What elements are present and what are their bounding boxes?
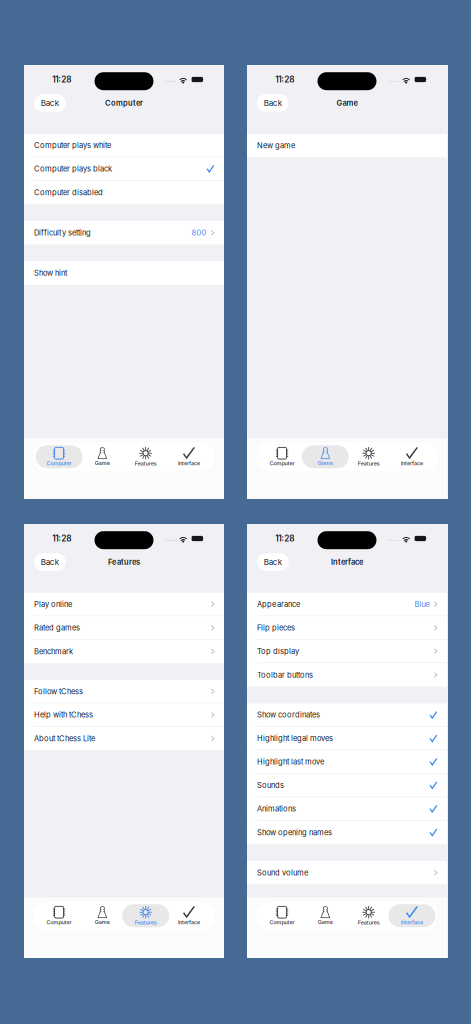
button[interactable]: Interface: [388, 445, 435, 468]
button[interactable]: Show hint: [24, 261, 224, 285]
staticText: Toolbar buttons: [257, 670, 313, 679]
button[interactable]: Highlight last move: [247, 750, 447, 774]
button[interactable]: Help with tChess: [24, 703, 224, 727]
staticText: Computer: [270, 460, 295, 466]
staticText: Highlight last move: [257, 757, 324, 766]
staticText: Interface: [331, 557, 363, 566]
staticText: Rated games: [34, 623, 80, 632]
staticText: Game: [318, 460, 333, 466]
staticText: Computer: [105, 98, 143, 107]
button[interactable]: New game: [247, 134, 447, 157]
button[interactable]: Features: [122, 445, 169, 468]
button[interactable]: Back: [257, 94, 289, 112]
staticText: Difficulty setting: [34, 228, 91, 237]
staticText: Interface: [401, 460, 423, 466]
staticText: Interface: [401, 919, 423, 925]
staticText: Highlight legal moves: [257, 734, 333, 743]
staticText: Blue: [414, 600, 429, 609]
button[interactable]: Computer disabled: [24, 181, 224, 204]
staticText: About tChess Lite: [34, 734, 95, 743]
staticText: Features: [108, 557, 140, 566]
staticText: Show coordinates: [257, 710, 320, 719]
staticText: Show hint: [34, 268, 67, 277]
staticText: Flip pieces: [257, 623, 295, 632]
button[interactable]: Back: [34, 553, 66, 571]
staticText: Back: [41, 557, 59, 567]
button[interactable]: Computer plays white: [24, 134, 224, 157]
staticText: Computer plays black: [34, 164, 112, 173]
staticText: Back: [41, 98, 59, 108]
button[interactable]: Features: [345, 445, 392, 468]
button[interactable]: Game: [79, 445, 126, 468]
staticText: Interface: [178, 919, 200, 925]
button[interactable]: Computer: [259, 904, 306, 927]
button[interactable]: Game: [302, 904, 349, 927]
button[interactable]: Game: [302, 445, 349, 468]
button[interactable]: Show opening names: [247, 821, 447, 844]
staticText: 11:28: [275, 75, 294, 84]
button[interactable]: Interface: [388, 904, 435, 927]
button[interactable]: Top display: [247, 640, 447, 663]
staticText: Benchmark: [34, 647, 73, 656]
button[interactable]: Highlight legal moves: [247, 727, 447, 750]
button[interactable]: Flip pieces: [247, 616, 447, 640]
button[interactable]: Toolbar buttons: [247, 663, 447, 686]
staticText: Game: [95, 919, 110, 925]
staticText: Features: [135, 460, 157, 467]
button[interactable]: Features: [122, 904, 169, 927]
staticText: Features: [358, 919, 380, 926]
staticText: Show opening names: [257, 828, 332, 837]
staticText: Computer: [270, 919, 295, 925]
staticText: Back: [264, 98, 282, 108]
button[interactable]: Computer: [35, 904, 82, 927]
staticText: Sounds: [257, 781, 284, 790]
staticText: Features: [135, 919, 157, 926]
button[interactable]: Sound volume: [247, 861, 447, 884]
button[interactable]: Computer: [259, 445, 306, 468]
staticText: Interface: [178, 460, 200, 466]
staticText: Help with tChess: [34, 710, 93, 719]
staticText: Back: [264, 557, 282, 567]
button[interactable]: Back: [34, 94, 66, 112]
button[interactable]: About tChess Lite: [24, 727, 224, 750]
staticText: 800: [191, 228, 206, 237]
button[interactable]: Difficulty setting: [24, 221, 224, 244]
staticText: Appearance: [257, 600, 300, 609]
button[interactable]: Back: [257, 553, 289, 571]
staticText: Computer: [46, 460, 71, 466]
button[interactable]: Computer: [35, 445, 82, 468]
button[interactable]: Follow tChess: [24, 680, 224, 703]
button[interactable]: Interface: [165, 445, 212, 468]
staticText: Animations: [257, 804, 296, 813]
button[interactable]: Interface: [165, 904, 212, 927]
staticText: Game: [318, 919, 333, 925]
staticText: Computer plays white: [34, 141, 111, 150]
button[interactable]: Sounds: [247, 774, 447, 797]
button[interactable]: Computer plays black: [24, 157, 224, 181]
staticText: 11:28: [52, 75, 71, 84]
staticText: Sound volume: [257, 868, 308, 877]
staticText: 11:28: [275, 534, 294, 543]
staticText: 11:28: [52, 534, 71, 543]
button[interactable]: Animations: [247, 797, 447, 821]
staticText: Features: [358, 460, 380, 467]
staticText: New game: [257, 141, 295, 150]
button[interactable]: Features: [345, 904, 392, 927]
button[interactable]: Show coordinates: [247, 703, 447, 727]
button[interactable]: Play online: [24, 593, 224, 616]
button[interactable]: Benchmark: [24, 640, 224, 663]
button[interactable]: Game: [79, 904, 126, 927]
button[interactable]: Rated games: [24, 616, 224, 640]
staticText: Follow tChess: [34, 687, 83, 696]
staticText: Computer: [46, 919, 71, 925]
staticText: Play online: [34, 600, 72, 609]
staticText: Computer disabled: [34, 188, 103, 197]
staticText: Game: [95, 460, 110, 466]
staticText: Top display: [257, 647, 299, 656]
button[interactable]: Appearance: [247, 593, 447, 616]
staticText: Game: [336, 98, 357, 107]
